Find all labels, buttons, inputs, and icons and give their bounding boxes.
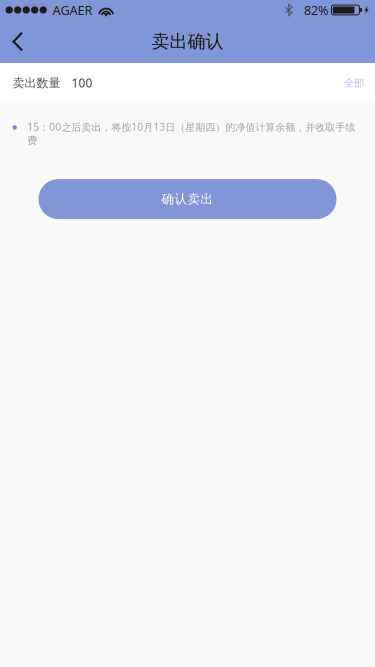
staticText: 确认卖出 [161,191,213,207]
staticText: AGAER [52,1,92,19]
staticText: 卖出确认 [151,30,223,53]
button[interactable]: 返回 [0,20,35,63]
staticText: 82% [304,1,328,19]
staticText: 100 [71,75,92,91]
staticText: 全部 [344,77,364,89]
button[interactable]: 全部 [344,77,364,89]
staticText: 15：00之后卖出，将按10月13日（星期四）的净值计算余额，并收取手续费 [27,120,355,147]
button[interactable]: 确认卖出 [38,179,336,219]
staticText: 卖出数量 [12,75,60,90]
